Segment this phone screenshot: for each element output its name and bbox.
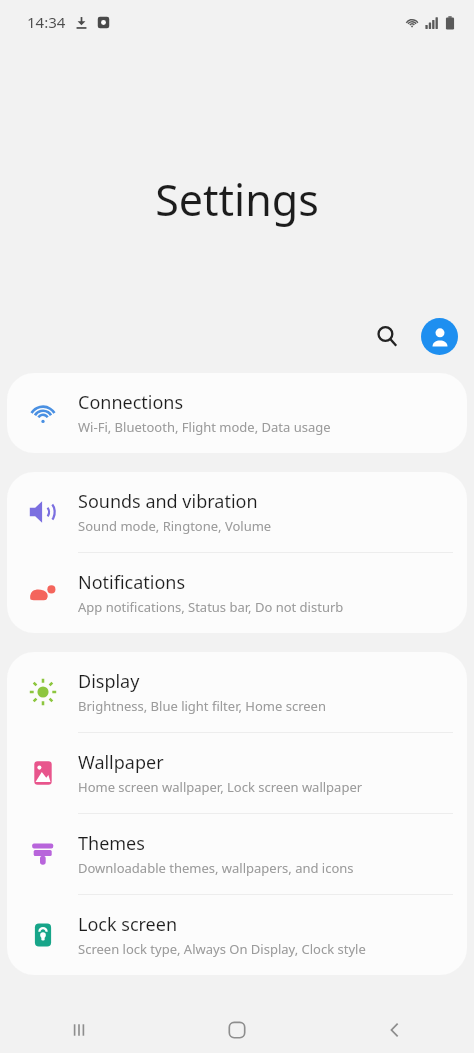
button[interactable]: Wallpaper xyxy=(7,733,467,813)
button[interactable]: Search xyxy=(363,312,411,360)
button[interactable]: Themes xyxy=(7,814,467,894)
staticText: Notifications xyxy=(78,570,186,595)
staticText: Brightness, Blue light filter, Home scre… xyxy=(78,697,326,715)
button[interactable]: Account xyxy=(421,318,458,355)
staticText: App notifications, Status bar, Do not di… xyxy=(78,598,344,616)
staticText: Screen lock type, Always On Display, Clo… xyxy=(78,940,366,958)
staticText: Sound mode, Ringtone, Volume xyxy=(78,517,272,535)
button[interactable]: Back xyxy=(316,1006,474,1053)
staticText: Downloadable themes, wallpapers, and ico… xyxy=(78,859,354,877)
button[interactable]: Sounds and vibration xyxy=(7,472,467,552)
button[interactable]: Display xyxy=(7,652,467,732)
staticText: Themes xyxy=(78,831,145,856)
staticText: Settings xyxy=(155,170,319,229)
button[interactable]: Recents xyxy=(0,1006,158,1053)
button[interactable]: Home xyxy=(158,1006,316,1053)
staticText: Connections xyxy=(78,390,184,415)
button[interactable]: Lock screen xyxy=(7,895,467,975)
staticText: Display xyxy=(78,669,140,694)
button[interactable]: Connections xyxy=(7,373,467,453)
staticText: Lock screen xyxy=(78,912,178,937)
staticText: Sounds and vibration xyxy=(78,489,258,514)
button[interactable]: Notifications xyxy=(7,553,467,633)
staticText: Wallpaper xyxy=(78,750,164,775)
staticText: Home screen wallpaper, Lock screen wallp… xyxy=(78,778,363,796)
staticText: 14:34 xyxy=(27,12,66,32)
staticText: Wi-Fi, Bluetooth, Flight mode, Data usag… xyxy=(78,418,331,436)
